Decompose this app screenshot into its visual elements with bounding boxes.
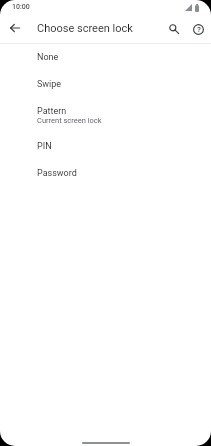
button[interactable]: None: [0, 45, 211, 72]
button[interactable]: Navigate up: [3, 16, 27, 40]
staticText: Current screen lock: [37, 116, 102, 125]
button[interactable]: Swipe: [0, 72, 211, 99]
staticText: None: [37, 52, 59, 63]
staticText: 10:00: [12, 3, 30, 11]
staticText: Choose screen lock: [37, 22, 133, 35]
button[interactable]: Search: [162, 17, 186, 41]
staticText: PIN: [37, 141, 52, 152]
staticText: Swipe: [37, 79, 62, 90]
staticText: ?: [197, 25, 201, 34]
button[interactable]: Pattern: [0, 99, 211, 134]
button[interactable]: PIN: [0, 134, 211, 161]
button[interactable]: Help: [186, 17, 210, 41]
staticText: Password: [37, 168, 77, 179]
button[interactable]: Password: [0, 161, 211, 188]
staticText: Pattern: [37, 106, 67, 117]
